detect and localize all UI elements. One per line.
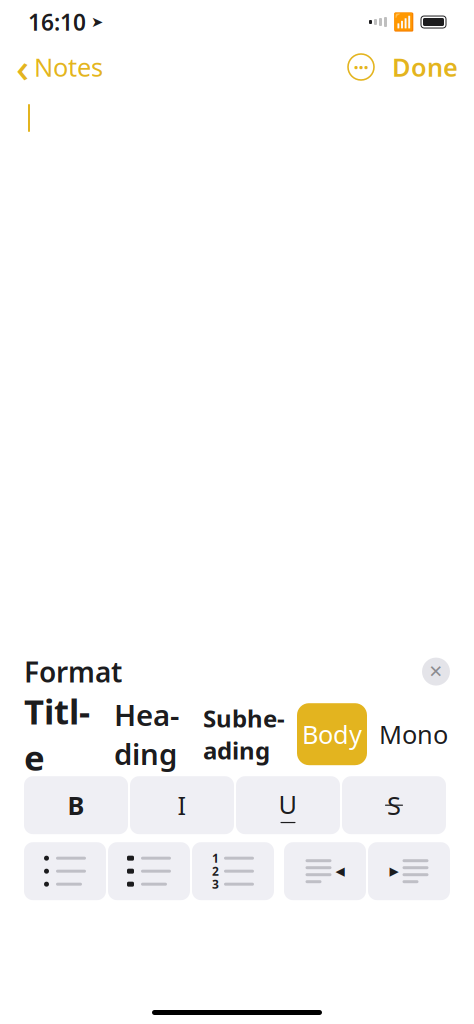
staticText: ➤ (91, 14, 103, 30)
button[interactable]: Underline (236, 776, 340, 834)
staticText: 1 (212, 850, 219, 866)
staticText: U (278, 787, 297, 821)
staticText: Notes (34, 50, 103, 84)
staticText: I (177, 788, 186, 822)
staticText: Format (24, 653, 122, 690)
staticText: ▶ (389, 864, 398, 878)
staticText: 16:10 (28, 7, 86, 37)
staticText: ✕ (428, 662, 443, 681)
button[interactable]: Bold (24, 776, 128, 834)
staticText: Title (24, 688, 90, 780)
button[interactable]: Title (12, 678, 102, 790)
staticText: 3 (212, 876, 219, 892)
button[interactable]: Dashed list (108, 842, 190, 900)
button[interactable]: Mono (367, 707, 460, 761)
staticText: 📶 (393, 12, 415, 32)
button[interactable]: ‹ (16, 36, 103, 97)
button[interactable]: Increase indent (368, 842, 450, 900)
button[interactable]: Strikethrough (342, 776, 446, 834)
button[interactable]: More options (348, 54, 374, 80)
staticText: ··· (353, 55, 368, 79)
staticText: ‹ (16, 40, 29, 93)
button[interactable]: Italic (130, 776, 234, 834)
staticText: B (67, 788, 84, 822)
button[interactable]: Close (422, 658, 450, 686)
button[interactable]: Body (297, 703, 367, 765)
staticText: Heading (114, 695, 179, 773)
button[interactable]: Subheading (191, 692, 297, 776)
staticText: 2 (212, 863, 219, 879)
staticText: Body (302, 717, 362, 751)
button[interactable]: Numbered list (192, 842, 274, 900)
button[interactable]: Bulleted list (24, 842, 106, 900)
button[interactable]: Decrease indent (284, 842, 366, 900)
button[interactable]: Done (374, 46, 458, 88)
staticText: Subheading (203, 702, 285, 766)
staticText: Mono (379, 717, 448, 751)
staticText: S (387, 788, 401, 822)
button[interactable]: Heading (102, 685, 191, 783)
staticText: Done (392, 50, 458, 84)
staticText: ◀ (335, 864, 344, 878)
